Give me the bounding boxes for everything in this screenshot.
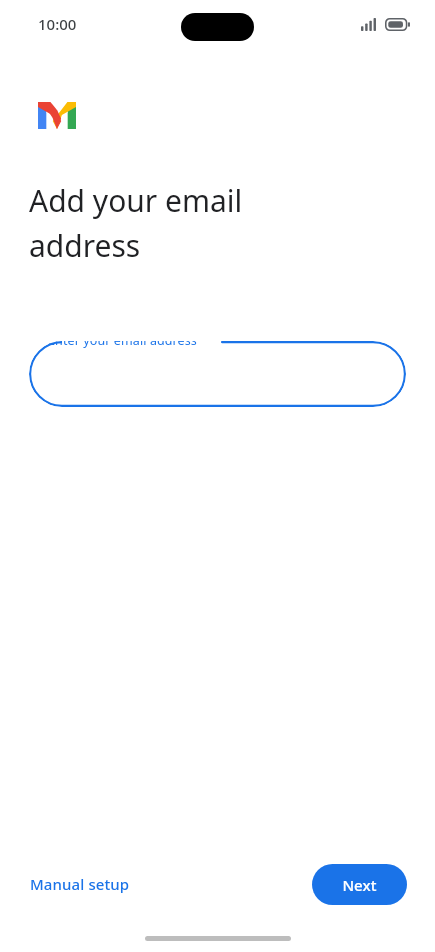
staticText: Manual setup: [30, 874, 130, 894]
button[interactable]: Next: [312, 864, 407, 905]
staticText: Next: [342, 875, 377, 895]
staticText: Enter your email address: [48, 341, 197, 349]
button[interactable]: Enter your email address: [29, 341, 406, 407]
staticText: Add your email address: [29, 180, 243, 265]
staticText: 10:00: [38, 14, 77, 34]
button[interactable]: Manual setup: [18, 864, 142, 904]
